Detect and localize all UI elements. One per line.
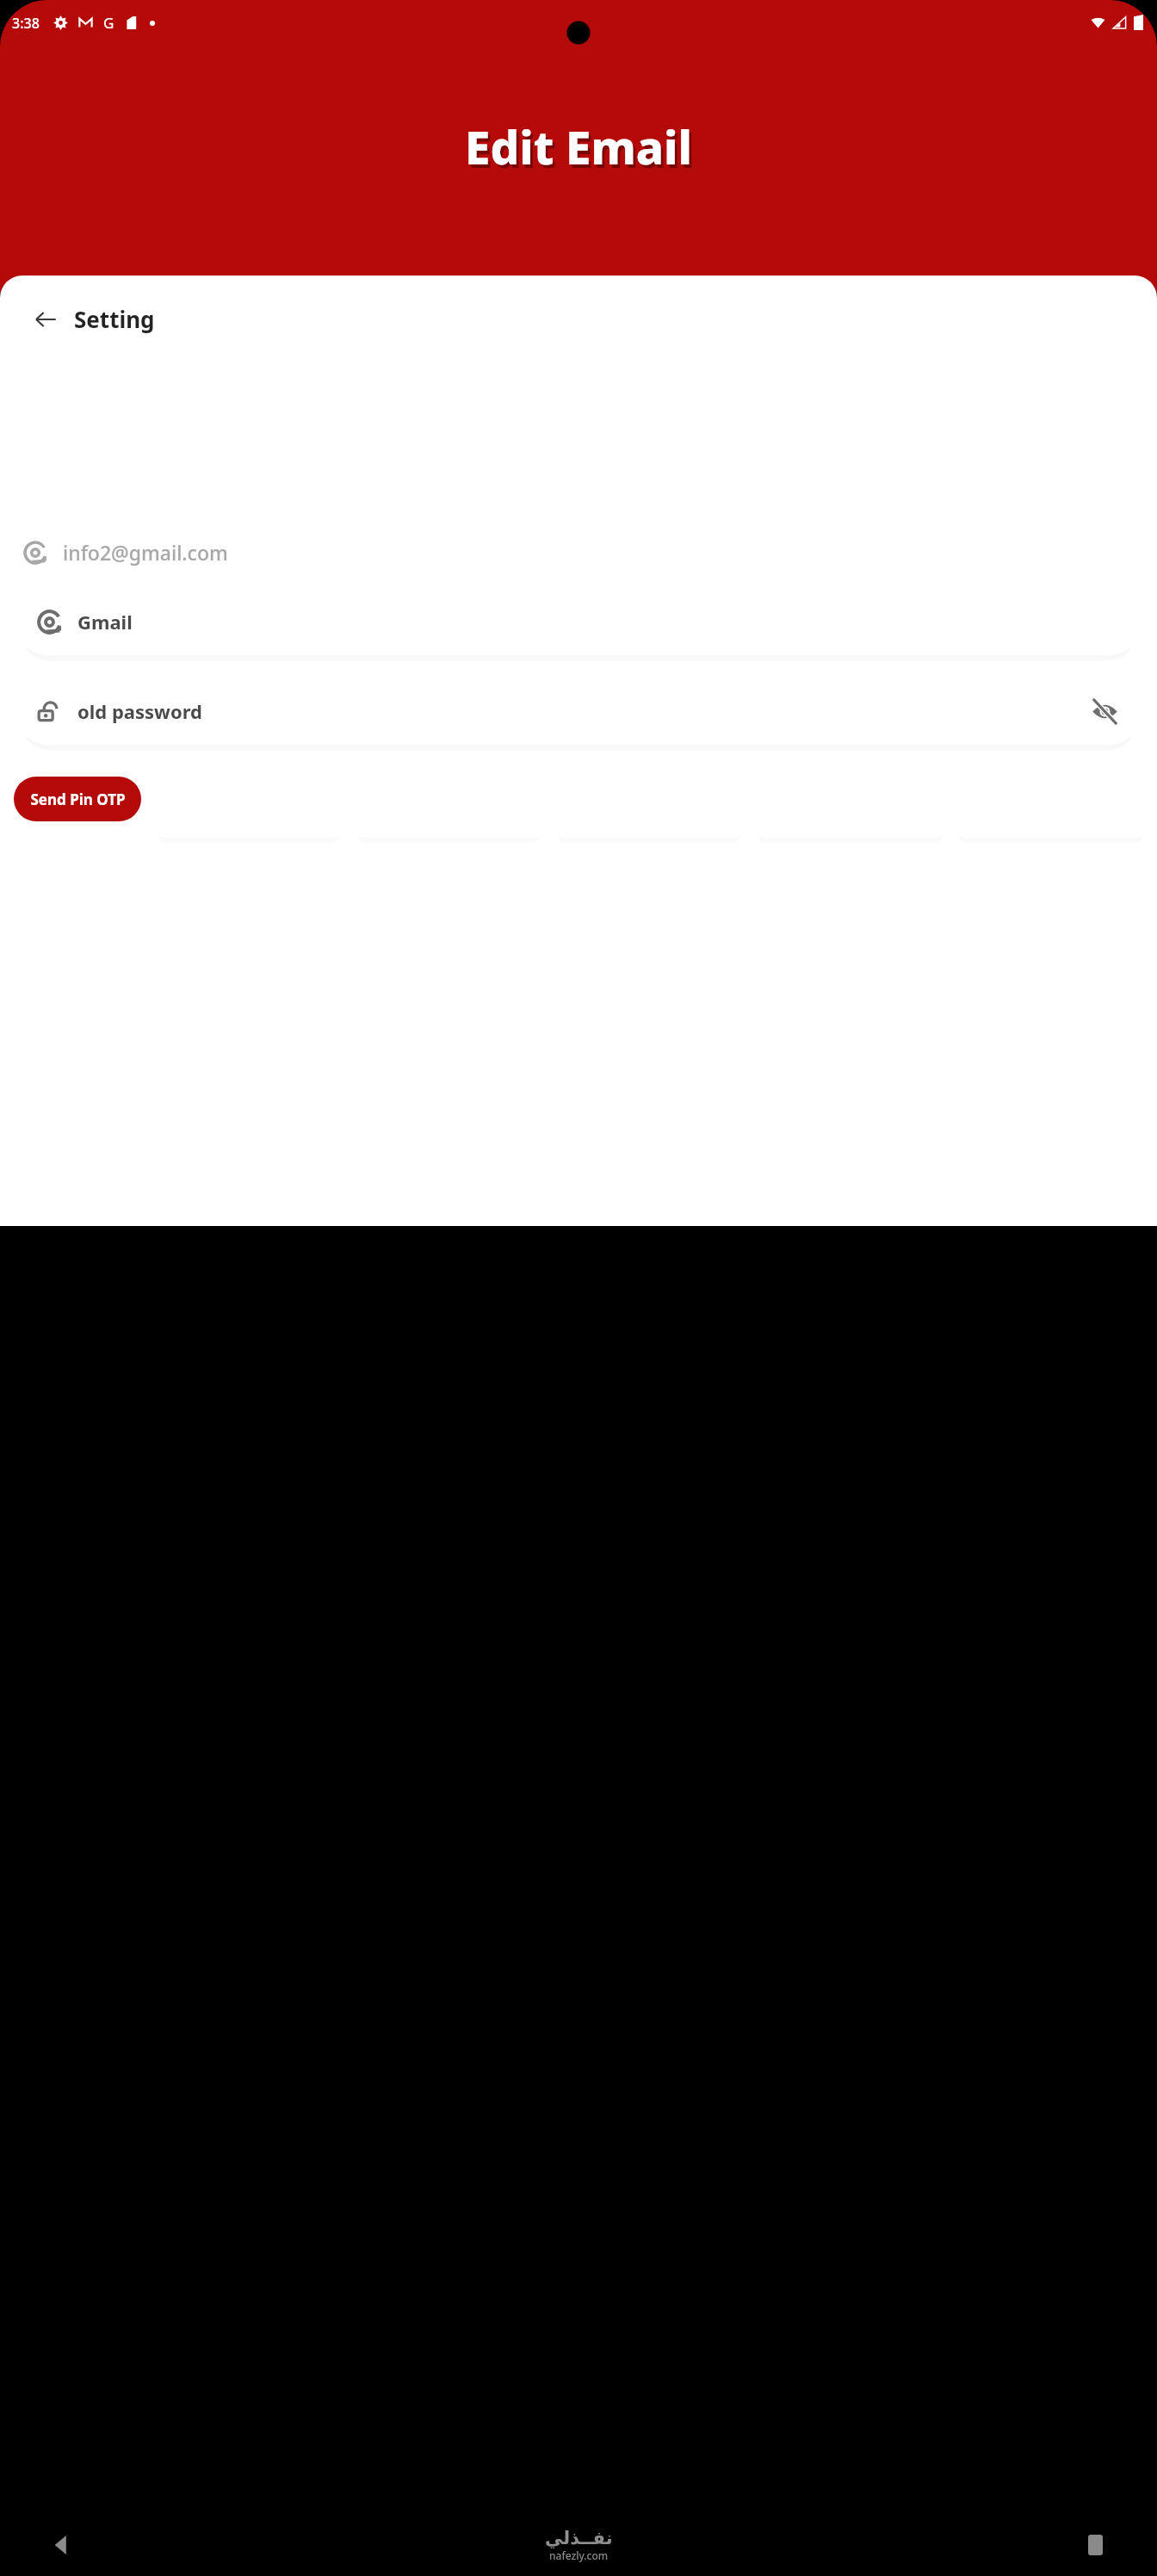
staticText: G (103, 13, 114, 33)
staticText: نفــذلي (545, 2528, 613, 2548)
staticText: nafezly.com (549, 2548, 609, 2562)
button[interactable]: Send Pin OTP (14, 777, 141, 821)
button[interactable]: Email (14, 588, 1143, 655)
button[interactable]: Back (41, 2524, 83, 2566)
staticText: Edit Email (467, 119, 695, 181)
other: Password (36, 698, 63, 725)
staticText: Gmail (77, 609, 133, 635)
staticText: old password (77, 698, 202, 724)
staticText: Send Pin OTP (30, 790, 126, 809)
staticText: info2@gmail.com (63, 539, 228, 566)
button[interactable]: Recent apps (1074, 2524, 1116, 2566)
staticText: 3:38 (12, 14, 40, 33)
button[interactable]: Show password (1088, 695, 1121, 728)
other: Email (36, 609, 63, 635)
other: Back (31, 305, 60, 334)
staticText: Edit Email (465, 115, 692, 177)
button[interactable]: Password (14, 678, 1143, 745)
button[interactable]: Back (26, 299, 160, 339)
staticText: Setting (74, 304, 155, 334)
